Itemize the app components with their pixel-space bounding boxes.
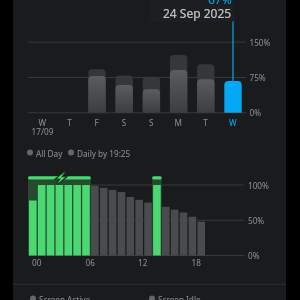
- button[interactable]: [0, 0, 300, 300]
